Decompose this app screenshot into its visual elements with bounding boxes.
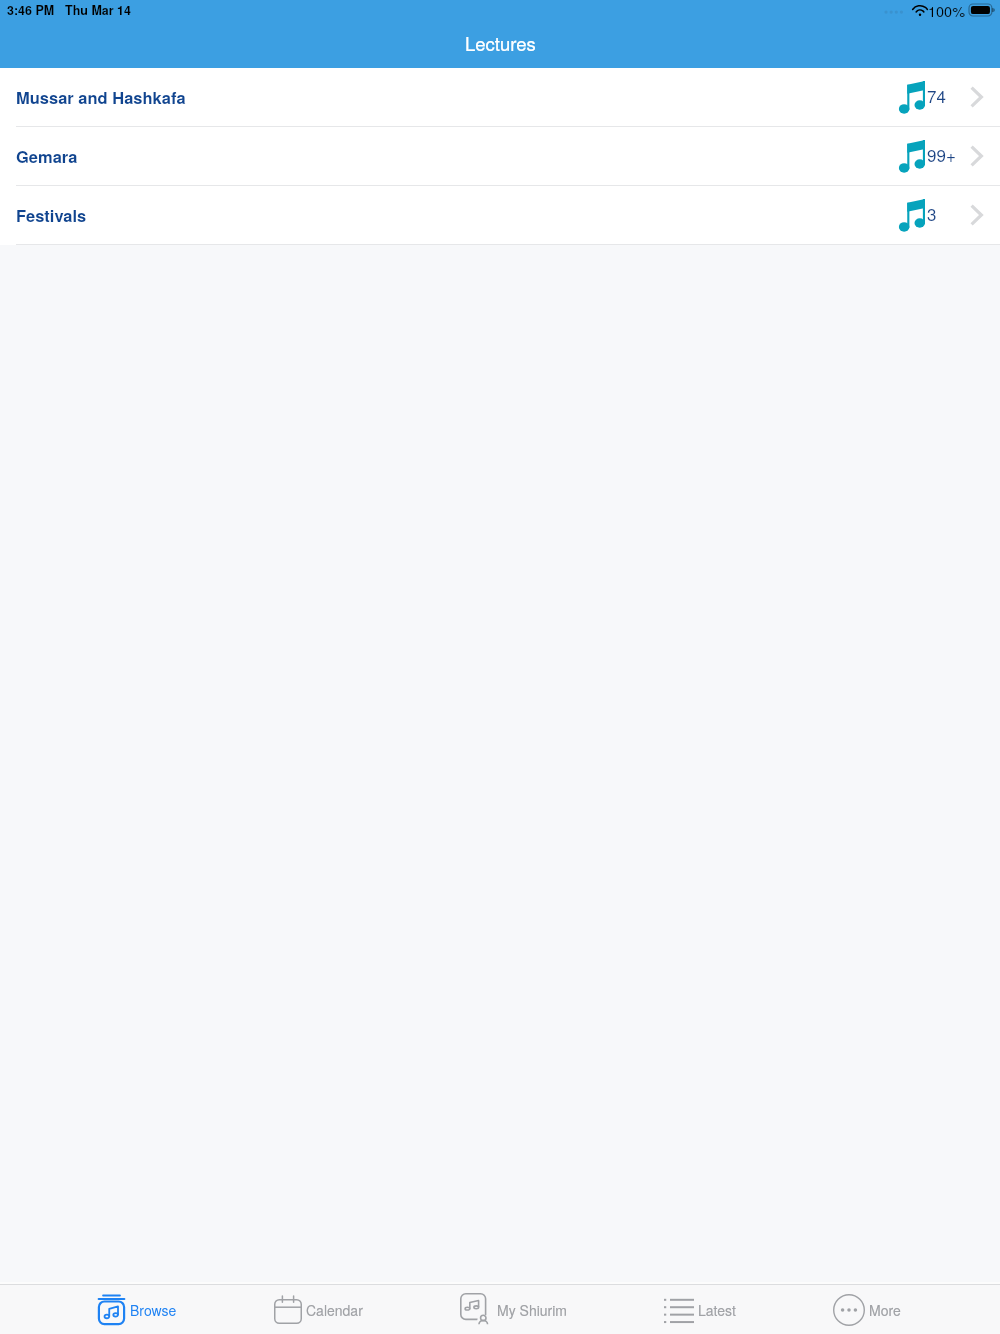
button[interactable]: More xyxy=(833,1285,901,1334)
staticText: 3 xyxy=(927,201,937,225)
button[interactable]: Latest xyxy=(664,1285,736,1334)
staticText: Calendar xyxy=(306,1300,363,1320)
button[interactable]: Festivals xyxy=(0,186,1000,245)
staticText: Latest xyxy=(698,1300,736,1320)
staticText: Lectures xyxy=(465,30,536,56)
staticText: 74 xyxy=(927,83,946,107)
staticText: 99+ xyxy=(927,142,956,166)
button[interactable]: Browse xyxy=(97,1285,177,1334)
staticText: 3:46 PM xyxy=(7,1,55,19)
staticText: Mussar and Hashkafa xyxy=(16,85,186,109)
staticText: Gemara xyxy=(16,144,78,168)
staticText: My Shiurim xyxy=(497,1300,567,1320)
staticText: Festivals xyxy=(16,203,87,227)
button[interactable]: Mussar and Hashkafa xyxy=(0,68,1000,127)
button[interactable]: My Shiurim xyxy=(460,1285,567,1334)
button[interactable]: Calendar xyxy=(274,1285,363,1334)
staticText: Browse xyxy=(130,1300,177,1320)
button[interactable]: Gemara xyxy=(0,127,1000,186)
staticText: More xyxy=(869,1300,901,1320)
staticText: 100% xyxy=(928,0,966,19)
staticText: Thu Mar 14 xyxy=(65,1,131,19)
